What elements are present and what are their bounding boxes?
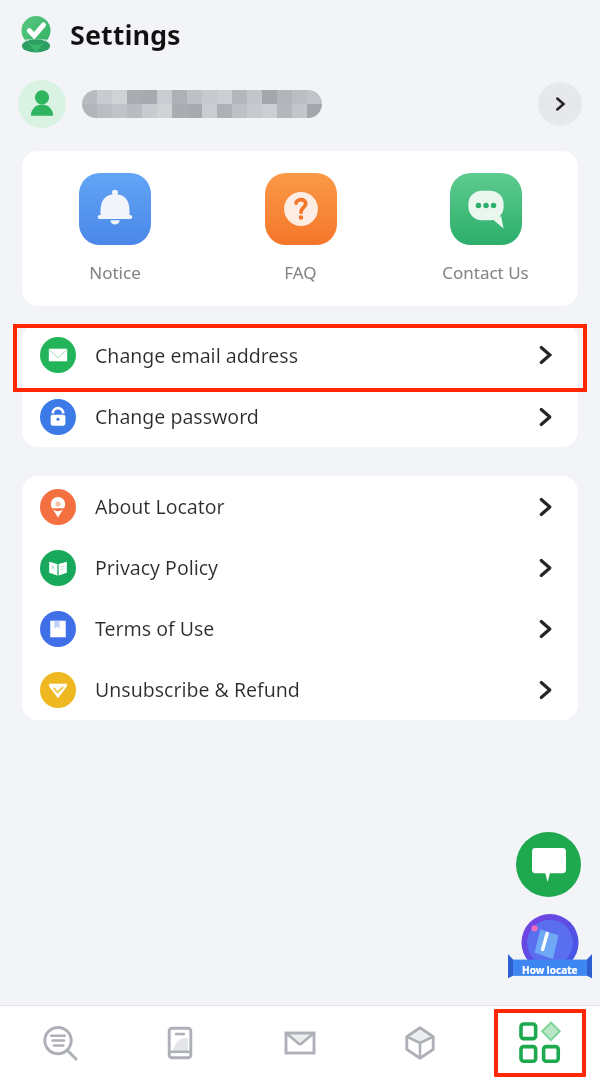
button[interactable]: How locate guide <box>508 910 592 984</box>
button[interactable]: Change password <box>22 386 578 447</box>
button[interactable]: Package <box>360 1006 480 1079</box>
button[interactable]: Unsubscribe & Refund <box>22 659 578 720</box>
staticText: FAQ <box>284 261 317 284</box>
button[interactable]: Messages <box>240 1006 360 1079</box>
staticText: How locate <box>522 963 578 977</box>
button[interactable]: Device <box>120 1006 240 1079</box>
button[interactable]: Terms of Use <box>22 598 578 659</box>
staticText: Notice <box>89 261 141 284</box>
button[interactable]: Search <box>0 1006 120 1079</box>
button[interactable]: FAQ <box>208 151 393 306</box>
button[interactable]: Privacy Policy <box>22 537 578 598</box>
button[interactable]: Settings tab <box>494 1009 586 1077</box>
staticText: Settings <box>70 16 181 53</box>
button[interactable]: Contact Us <box>393 151 578 306</box>
button[interactable]: Open profile <box>538 82 582 126</box>
button[interactable]: Notice <box>22 151 208 306</box>
button[interactable]: Open profile <box>0 68 600 140</box>
button[interactable]: Change email address <box>22 324 578 386</box>
staticText: Change password <box>95 403 259 430</box>
staticText: Unsubscribe & Refund <box>95 676 300 703</box>
button[interactable]: Chat support <box>516 832 581 897</box>
staticText: Terms of Use <box>95 615 215 642</box>
staticText: About Locator <box>95 493 225 520</box>
staticText: Change email address <box>95 342 298 369</box>
staticText: Contact Us <box>442 261 529 284</box>
staticText: Privacy Policy <box>95 554 219 581</box>
button[interactable]: About Locator <box>22 476 578 537</box>
